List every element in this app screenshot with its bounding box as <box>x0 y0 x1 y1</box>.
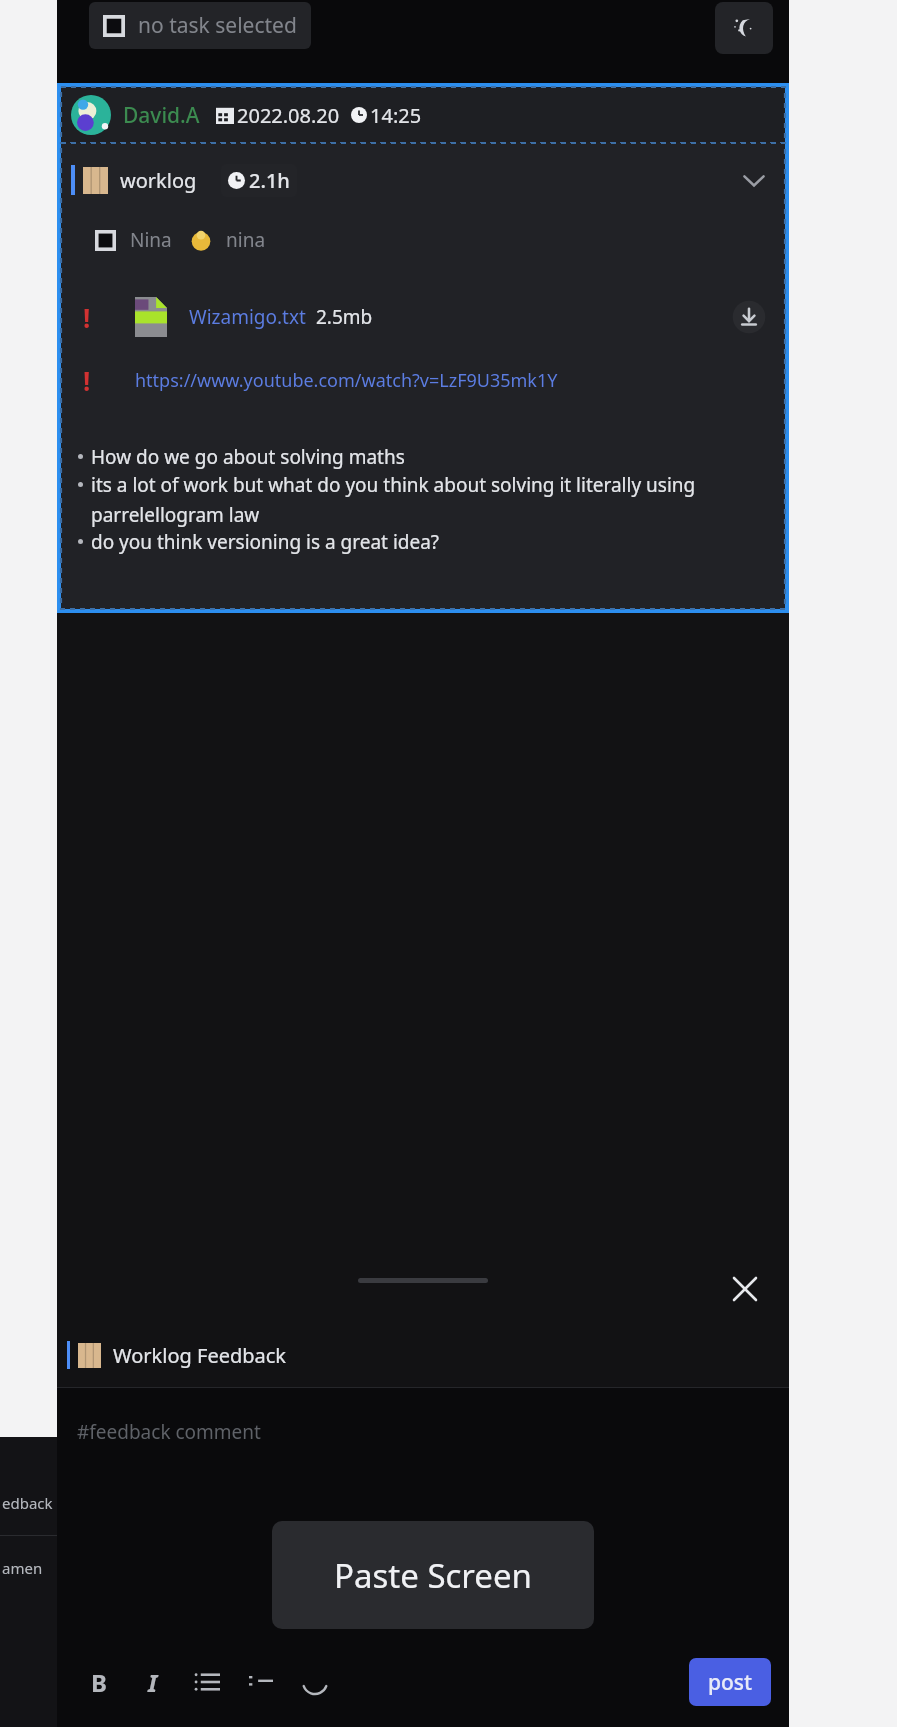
button[interactable]: edback <box>0 1437 57 1727</box>
button[interactable]: #feedback comment <box>77 1419 261 1445</box>
button[interactable]: Nina <box>95 227 266 253</box>
button[interactable]: Paste Screen <box>272 1521 594 1629</box>
staticText: David.A <box>123 101 200 130</box>
button[interactable]: Wizamigo.txt <box>189 304 306 330</box>
staticText: Nina <box>130 227 172 253</box>
staticText: its a lot of work but what do you think … <box>91 472 769 527</box>
button[interactable]: Close <box>725 1269 765 1309</box>
button[interactable]: Bold <box>79 1662 119 1702</box>
staticText: no task selected <box>138 11 297 40</box>
button[interactable]: Emoji <box>295 1662 335 1702</box>
button[interactable]: Download <box>731 299 767 335</box>
staticText: How do we go about solving maths <box>91 444 769 470</box>
button[interactable]: no task selected <box>89 2 311 49</box>
button[interactable]: Italic <box>133 1662 173 1702</box>
staticText: 2.5mb <box>316 304 373 330</box>
staticText: ! <box>83 300 91 335</box>
staticText: 14:25 <box>370 102 422 129</box>
button[interactable]: Collapse <box>737 163 771 197</box>
staticText: amen <box>2 1558 43 1578</box>
button[interactable]: post <box>689 1658 771 1706</box>
staticText: edback <box>2 1493 53 1513</box>
staticText: 2022.08.20 <box>237 102 340 129</box>
button[interactable]: Indent <box>241 1662 281 1702</box>
staticText: B <box>91 1666 107 1699</box>
button[interactable]: Bulleted list <box>187 1662 227 1702</box>
button[interactable]: AI assist <box>715 2 773 54</box>
staticText: do you think versioning is a great idea? <box>91 529 769 555</box>
staticText: ! <box>83 363 91 398</box>
staticText: nina <box>226 227 266 253</box>
staticText: worklog <box>120 167 197 194</box>
button[interactable]: https://www.youtube.com/watch?v=LzF9U35m… <box>135 368 558 393</box>
button[interactable]: Worklog Feedback <box>67 1323 789 1387</box>
staticText: I <box>148 1666 158 1699</box>
staticText: 2.1h <box>249 167 290 194</box>
staticText: Worklog Feedback <box>113 1342 287 1369</box>
staticText: Paste Screen <box>334 1553 532 1598</box>
staticText: post <box>708 1668 753 1697</box>
button[interactable]: worklog <box>71 163 771 197</box>
button[interactable]: David.A <box>61 87 785 609</box>
